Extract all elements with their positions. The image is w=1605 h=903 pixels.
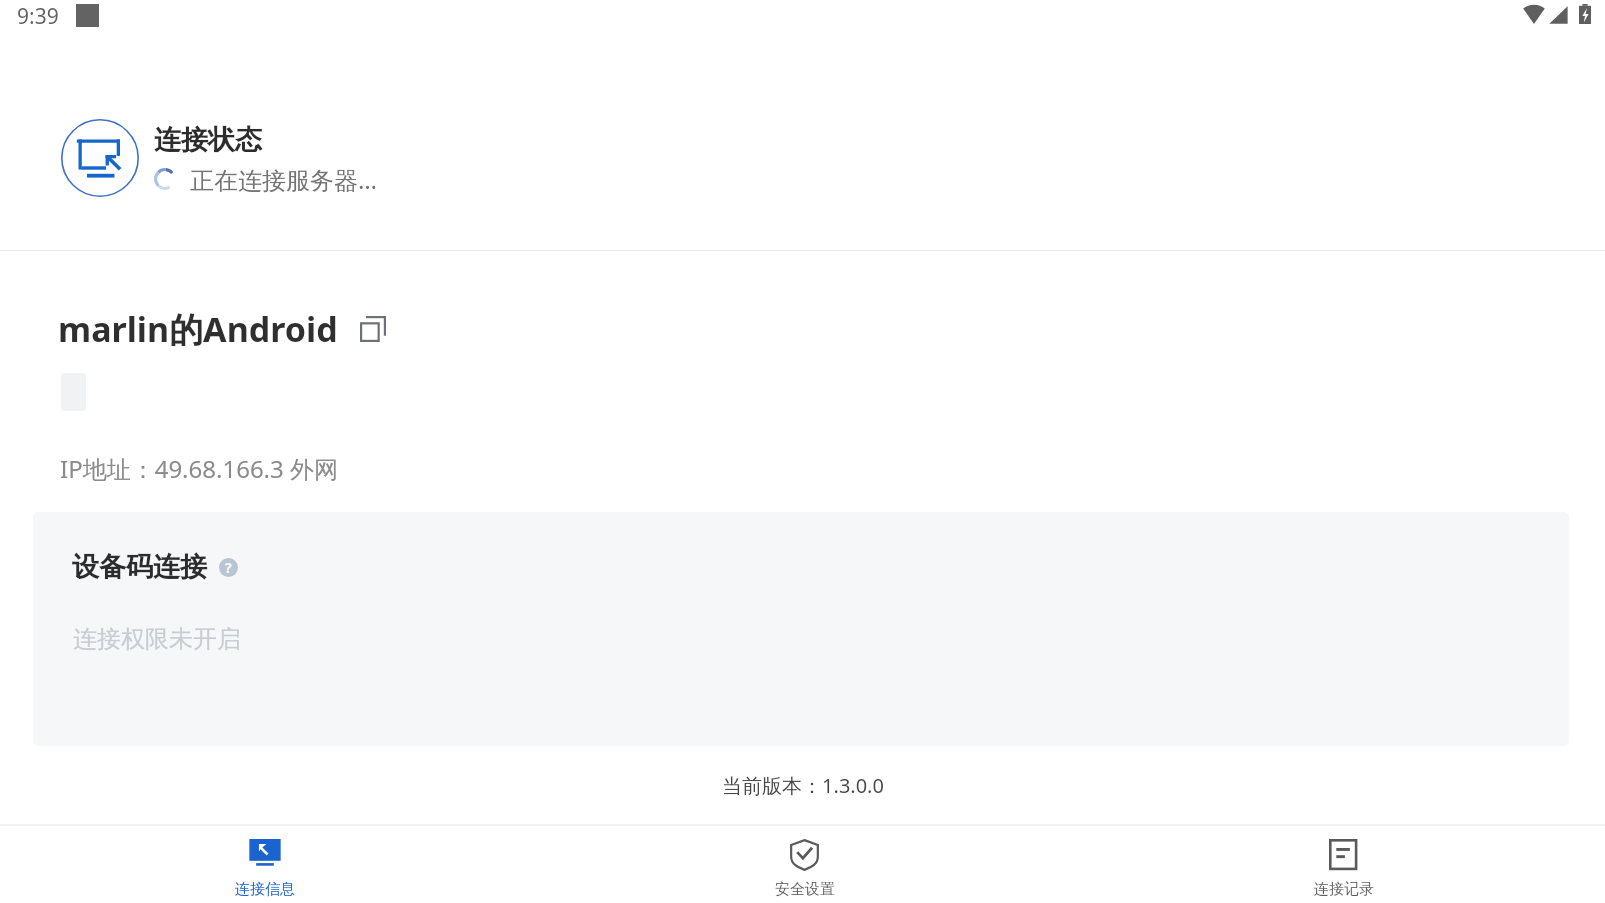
staticText: 连接记录 (1314, 880, 1374, 899)
button[interactable]: 安全设置 (535, 824, 1070, 903)
staticText: 安全设置 (775, 880, 835, 899)
staticText: 连接状态 (154, 123, 262, 157)
staticText: 连接权限未开启 (73, 624, 241, 654)
button[interactable]: 设备码连接 (33, 512, 1569, 746)
staticText: 当前版本：1.3.0.0 (722, 772, 884, 799)
staticText: 9:39 (17, 2, 59, 31)
button[interactable]: marlin的Android (58, 306, 388, 352)
button[interactable]: 帮助 (219, 558, 238, 577)
staticText: ? (225, 558, 232, 577)
staticText: 设备码连接 (72, 550, 207, 584)
staticText: IP地址：49.68.166.3 外网 (60, 452, 339, 485)
staticText: 连接信息 (235, 880, 295, 899)
staticText: 正在连接服务器… (190, 163, 377, 196)
button[interactable]: 连接状态 (0, 37, 1605, 249)
button[interactable]: 连接记录 (1070, 824, 1605, 903)
button[interactable]: 连接信息 (0, 824, 535, 903)
staticText: marlin的Android (58, 306, 338, 352)
button[interactable]: 复制 (358, 314, 388, 344)
